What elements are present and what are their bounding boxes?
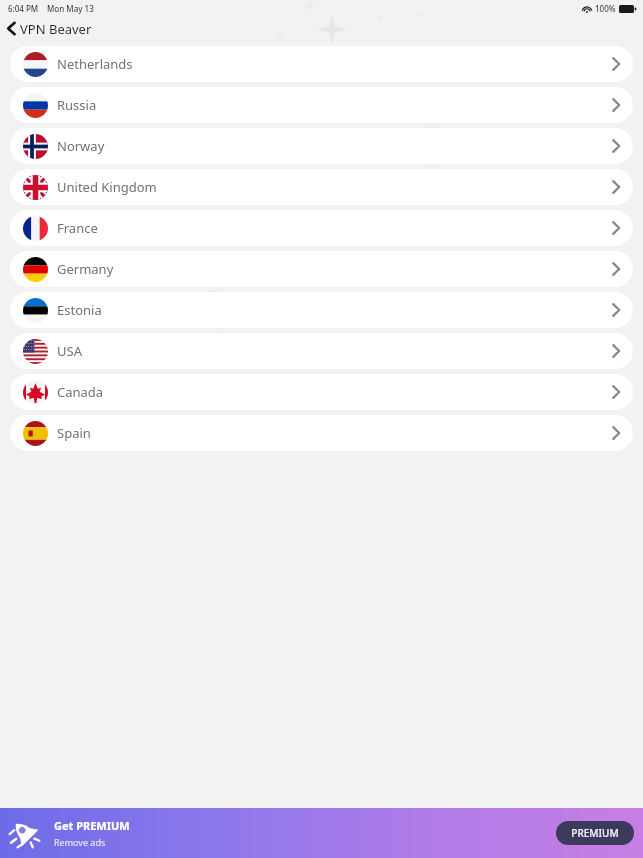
staticText: 100% (595, 3, 616, 14)
staticText: VPN Beaver (20, 20, 92, 38)
staticText: Get PREMIUM (54, 818, 130, 833)
staticText: Mon May 13 (47, 3, 94, 14)
other: Open Germany (611, 261, 621, 277)
staticText: PREMIUM (571, 826, 619, 840)
button[interactable]: Estonia (10, 292, 633, 328)
button[interactable]: Canada (10, 374, 633, 410)
other: Open Norway (611, 138, 621, 154)
button[interactable]: France (10, 210, 633, 246)
staticText: France (57, 219, 98, 237)
button[interactable]: Netherlands (10, 46, 633, 82)
button[interactable]: Spain (10, 415, 633, 451)
staticText: 6:04 PM (8, 3, 39, 14)
other: Back (6, 21, 17, 36)
staticText: United Kingdom (57, 178, 157, 196)
staticText: Estonia (57, 301, 102, 319)
other: Open USA (611, 343, 621, 359)
staticText: Canada (57, 383, 104, 401)
staticText: Russia (57, 96, 97, 114)
staticText: Spain (57, 424, 91, 442)
button[interactable]: Norway (10, 128, 633, 164)
button[interactable]: United Kingdom (10, 169, 633, 205)
button[interactable]: PREMIUM (556, 821, 634, 845)
other: Open Estonia (611, 302, 621, 318)
staticText: Remove ads (54, 836, 106, 848)
other: Open Spain (611, 425, 621, 441)
other: Open United Kingdom (611, 179, 621, 195)
staticText: Germany (57, 260, 114, 278)
staticText: USA (57, 342, 82, 360)
staticText: Norway (57, 137, 105, 155)
other: Open Canada (611, 384, 621, 400)
button[interactable]: Get PREMIUM (0, 808, 643, 858)
other: Open Russia (611, 97, 621, 113)
button[interactable]: Russia (10, 87, 633, 123)
button[interactable]: Back (0, 16, 643, 41)
other: Open France (611, 220, 621, 236)
button[interactable]: Germany (10, 251, 633, 287)
button[interactable]: USA (10, 333, 633, 369)
staticText: Netherlands (57, 55, 133, 73)
other: Open Netherlands (611, 56, 621, 72)
